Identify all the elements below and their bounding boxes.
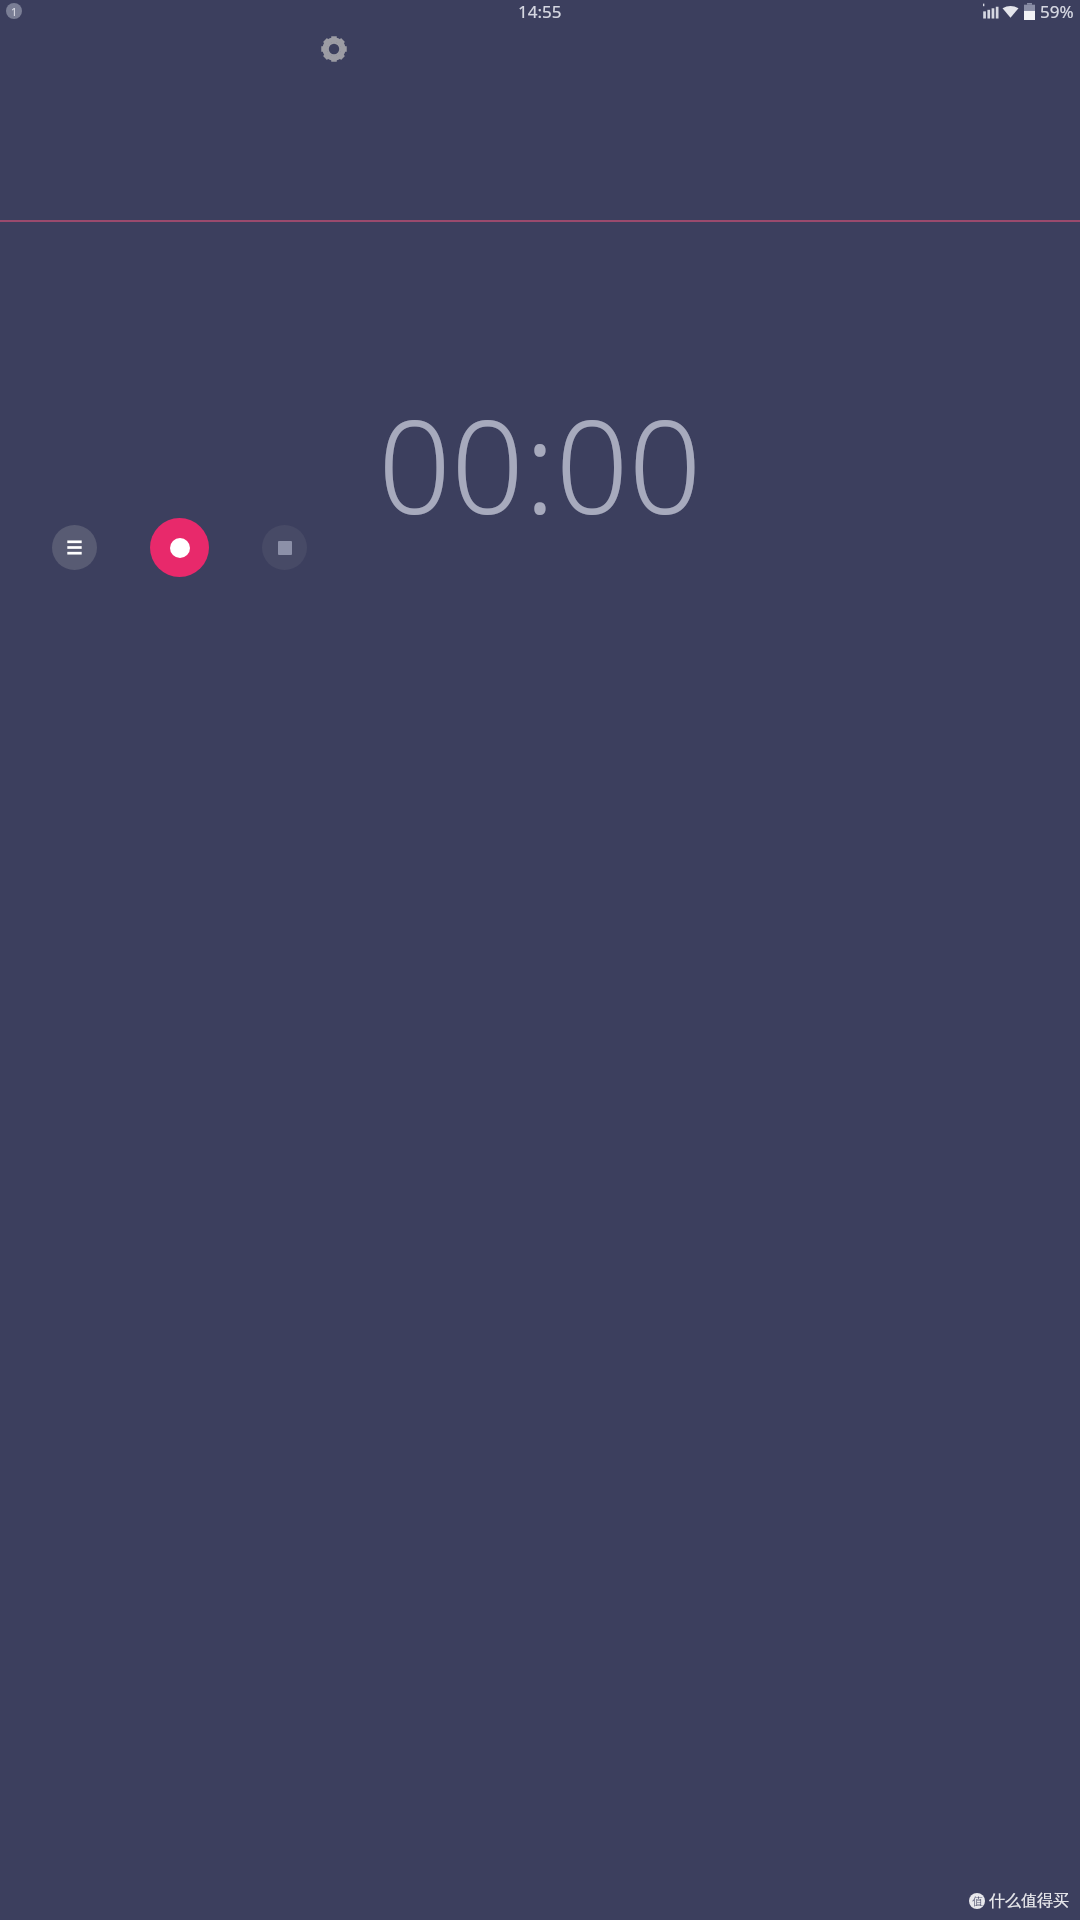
staticText: 值 (972, 1894, 983, 1908)
button[interactable]: Laps (52, 525, 97, 570)
staticText: 59% (1040, 0, 1074, 22)
staticText: 14:55 (518, 0, 562, 22)
staticText: 00:00 (378, 377, 702, 551)
button[interactable]: Stop (262, 525, 307, 570)
button[interactable]: Settings (312, 27, 356, 71)
staticText: 什么值得买 (989, 1891, 1069, 1911)
button[interactable]: Record (150, 518, 209, 577)
staticText: 1 (11, 4, 18, 19)
